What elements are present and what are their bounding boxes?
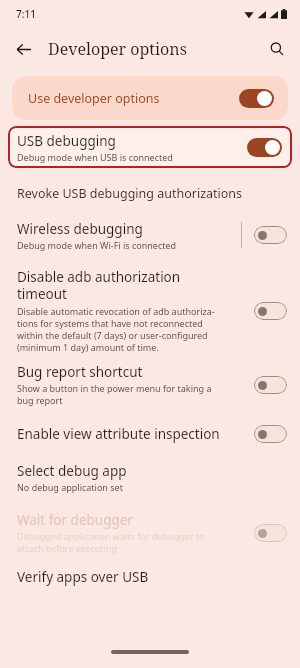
button[interactable]: USB debugging [8,126,292,168]
staticText: No debug application set [17,481,123,493]
button[interactable]: Verify apps over USB [0,568,300,586]
button[interactable]: Revoke USB debugging authorizations [0,176,300,210]
button[interactable]: Wireless debugging [0,210,300,260]
staticText: Use developer options [28,90,239,107]
button[interactable]: Wait for debugger [0,511,300,554]
staticText: Wireless debugging [17,220,143,238]
button[interactable]: Toggle off [254,376,287,394]
button[interactable]: Toggle off [254,524,287,542]
staticText: Debugged application waits for debugger … [17,530,205,554]
button[interactable]: Toggle off [254,302,287,320]
staticText: Disable adb authorization timeout [17,268,181,303]
staticText: 7:11 [16,7,36,21]
staticText: Bug report shortcut [17,363,143,381]
staticText: Show a button in the power menu for taki… [17,382,212,406]
button[interactable]: Enable view attribute inspection [0,418,300,450]
button[interactable]: Toggle on [239,89,274,108]
staticText: Wait for debugger [17,511,133,529]
staticText: Select debug app [17,462,127,480]
staticText: Debug mode when USB is connected [17,151,173,163]
staticText: USB debugging [17,132,116,150]
button[interactable]: Toggle on [247,138,282,157]
button[interactable]: Select debug app [0,462,300,493]
button[interactable]: Search [260,32,294,66]
staticText: Debug mode when Wi-Fi is connected [17,239,177,251]
button[interactable]: Back [6,32,40,66]
button[interactable]: Toggle off [254,226,287,244]
button[interactable]: Use developer options [12,76,288,120]
button[interactable]: Toggle off [254,425,287,443]
button[interactable]: Bug report shortcut [0,363,300,406]
staticText: Disable automatic revocation of adb auth… [17,305,215,353]
staticText: Developer options [48,38,187,60]
button[interactable]: Disable adb authorization timeout [0,266,300,355]
staticText: Revoke USB debugging authorizations [17,185,243,202]
staticText: Verify apps over USB [17,568,149,586]
staticText: Enable view attribute inspection [17,425,246,443]
